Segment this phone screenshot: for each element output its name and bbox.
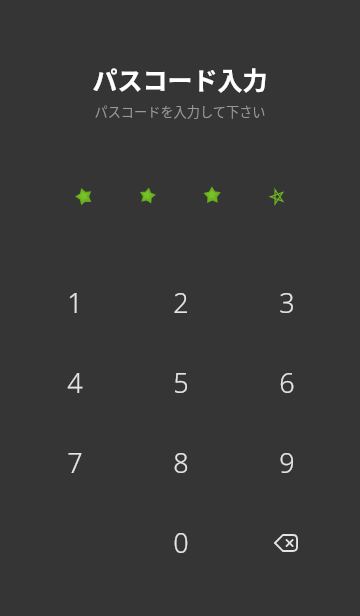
button[interactable]: 0: [128, 502, 234, 582]
button[interactable]: 8: [128, 422, 234, 502]
staticText: パスコードを入力して下さい: [94, 102, 266, 121]
staticText: 2: [173, 284, 189, 321]
staticText: 3: [279, 284, 295, 321]
button[interactable]: 3: [234, 262, 340, 342]
other: Passcode progress: 3 of 4: [0, 176, 360, 216]
staticText: 1: [67, 284, 83, 321]
staticText: 5: [173, 364, 189, 401]
staticText: 6: [279, 364, 295, 401]
staticText: パスコード入力: [92, 61, 268, 97]
button[interactable]: 2: [128, 262, 234, 342]
button[interactable]: 6: [234, 342, 340, 422]
button[interactable]: Backspace: [234, 502, 340, 582]
staticText: 4: [67, 364, 83, 401]
staticText: 8: [173, 444, 189, 481]
button[interactable]: 4: [22, 342, 128, 422]
staticText: 9: [279, 444, 295, 481]
button[interactable]: 9: [234, 422, 340, 502]
button[interactable]: 5: [128, 342, 234, 422]
staticText: 0: [173, 524, 189, 561]
staticText: 7: [67, 444, 83, 481]
button[interactable]: 7: [22, 422, 128, 502]
button[interactable]: 1: [22, 262, 128, 342]
